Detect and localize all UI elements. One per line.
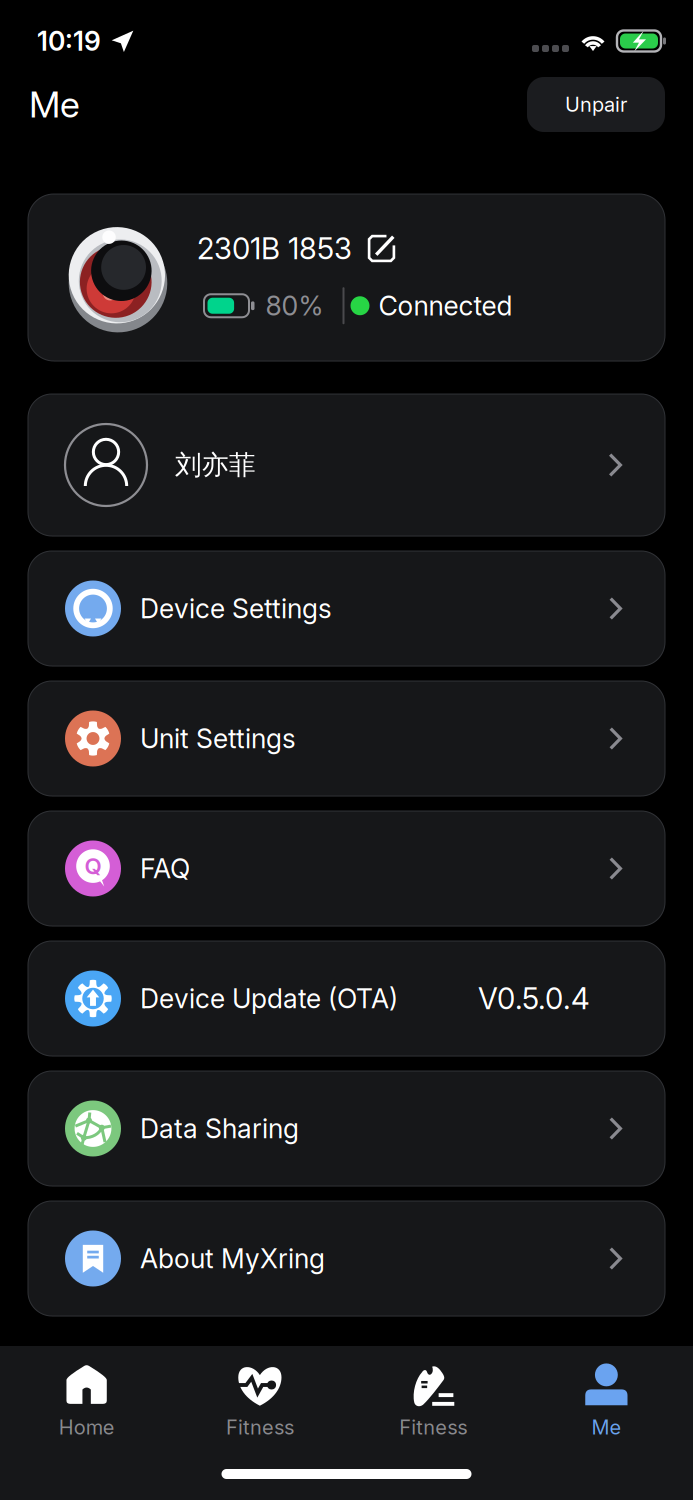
- staticText: Me: [591, 1415, 621, 1439]
- staticText: Device Settings: [140, 592, 332, 625]
- staticText: Fitness: [226, 1415, 294, 1439]
- button[interactable]: Unit Settings: [28, 681, 665, 796]
- staticText: FAQ: [140, 852, 190, 885]
- staticText: Fitness: [399, 1415, 467, 1439]
- button[interactable]: Device Update (OTA): [28, 941, 665, 1056]
- staticText: 80%: [265, 290, 323, 322]
- staticText: Data Sharing: [140, 1112, 299, 1145]
- button[interactable]: Fitness: [173, 1364, 346, 1439]
- staticText: About MyXring: [140, 1242, 325, 1275]
- staticText: 刘亦菲: [175, 448, 256, 482]
- button[interactable]: About MyXring: [28, 1201, 665, 1316]
- staticText: Home: [59, 1415, 115, 1439]
- staticText: Q: [84, 852, 101, 880]
- staticText: 10:19: [37, 25, 101, 57]
- staticText: Unpair: [565, 92, 627, 117]
- button[interactable]: Q: [28, 811, 665, 926]
- button[interactable]: 刘亦菲: [28, 394, 665, 536]
- staticText: Unit Settings: [140, 722, 296, 755]
- button[interactable]: Data Sharing: [28, 1071, 665, 1186]
- button[interactable]: Unpair: [527, 77, 665, 132]
- staticText: V0.5.0.4: [478, 981, 590, 1016]
- button[interactable]: Device Settings: [28, 551, 665, 666]
- button[interactable]: Me: [520, 1364, 693, 1439]
- staticText: Device Update (OTA): [140, 982, 398, 1015]
- staticText: Me: [29, 83, 80, 126]
- staticText: 2301B 1853: [197, 231, 352, 266]
- button[interactable]: Fitness: [346, 1364, 520, 1439]
- staticText: Connected: [378, 290, 512, 322]
- button[interactable]: Home: [0, 1364, 173, 1439]
